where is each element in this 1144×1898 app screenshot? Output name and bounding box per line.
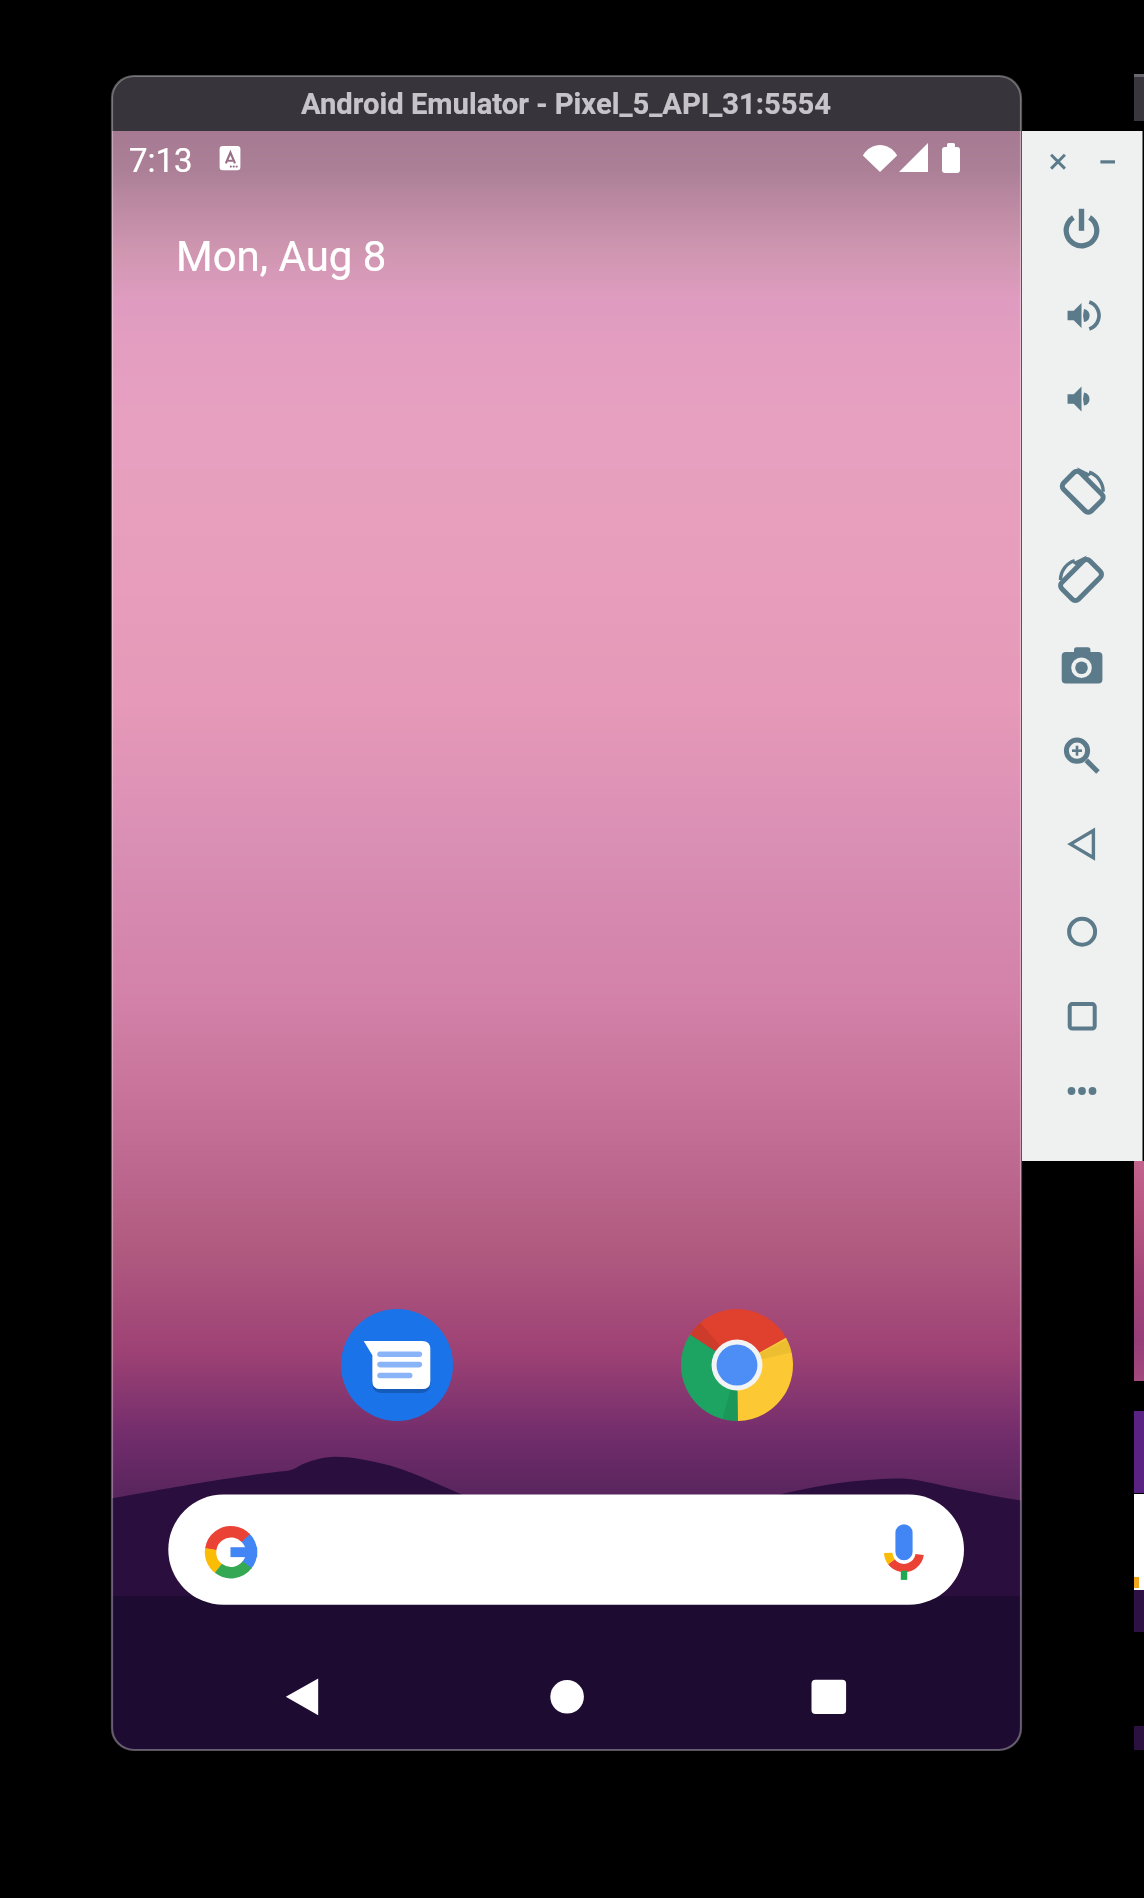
button[interactable]: Zoom <box>1059 730 1103 774</box>
button[interactable]: Overview <box>1059 983 1103 1027</box>
staticText: Mon, Aug 8 <box>176 232 387 281</box>
button[interactable]: More options <box>1059 1078 1103 1122</box>
button[interactable]: Home <box>532 1660 602 1734</box>
button[interactable]: Minimize <box>1088 140 1130 184</box>
button[interactable]: Chrome <box>681 1309 793 1421</box>
button[interactable]: Take screenshot <box>1059 644 1103 688</box>
button[interactable]: Rotate right <box>1059 462 1103 506</box>
button[interactable]: Android Emulator - Pixel_5_API_31:5554 <box>112 76 1021 131</box>
button[interactable]: Home <box>1059 903 1103 947</box>
button[interactable]: Mon, Aug 8 <box>176 232 387 281</box>
button[interactable]: Close emulator <box>1036 140 1080 184</box>
button[interactable]: Volume down <box>1059 377 1103 421</box>
button[interactable]: Search <box>169 1495 964 1610</box>
button[interactable]: Recent apps <box>793 1660 863 1734</box>
button[interactable]: Back <box>270 1660 340 1734</box>
button[interactable]: Back <box>1059 820 1103 864</box>
staticText: Android Emulator - Pixel_5_API_31:5554 <box>301 87 832 121</box>
button[interactable]: Power <box>1059 206 1103 250</box>
button[interactable]: Rotate left <box>1059 546 1103 590</box>
staticText: 7:13 <box>129 141 193 180</box>
button[interactable]: Messages <box>341 1309 453 1421</box>
button[interactable]: Volume up <box>1059 293 1103 337</box>
